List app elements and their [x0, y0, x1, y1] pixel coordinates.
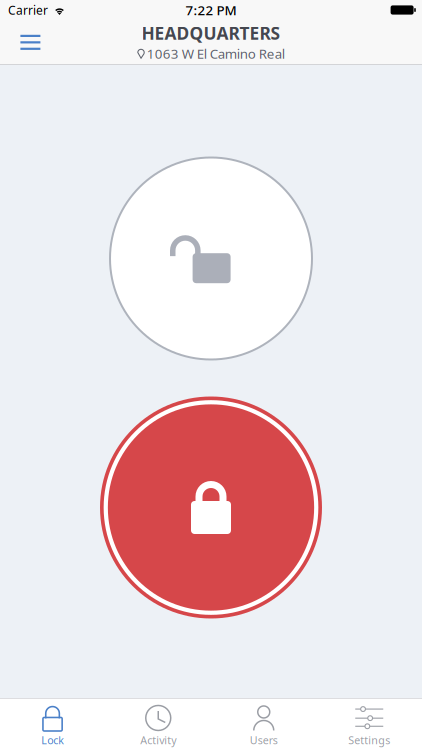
staticText: Lock [41, 733, 64, 747]
staticText: Carrier [8, 2, 48, 18]
button[interactable]: Lock [0, 698, 105, 750]
staticText: 7:22 PM [185, 1, 236, 19]
button[interactable]: Users [211, 698, 316, 750]
staticText: Users [250, 733, 278, 747]
staticText: 1063 W El Camino Real [147, 45, 285, 62]
staticText: Settings [348, 733, 390, 747]
button[interactable]: Menu [0, 20, 54, 63]
button[interactable]: Lock [100, 396, 322, 618]
button[interactable]: Unlock [110, 157, 312, 359]
button[interactable]: Settings [316, 698, 422, 750]
staticText: Activity [140, 733, 176, 747]
button[interactable]: Activity [105, 698, 211, 750]
staticText: HEADQUARTERS [141, 22, 280, 45]
